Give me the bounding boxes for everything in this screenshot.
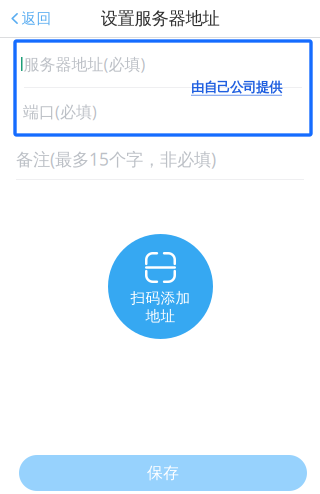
staticText: 设置服务器地址 <box>100 8 219 29</box>
staticText: 返回 <box>21 9 51 27</box>
button[interactable]: 返回 <box>0 0 62 37</box>
staticText: 由自己公司提供 <box>191 79 282 96</box>
button[interactable]: 备注(最多15个字，非必填) <box>0 138 320 180</box>
staticText: 扫码添加 <box>130 289 190 307</box>
button[interactable]: 端口(必填) <box>15 88 311 135</box>
button[interactable]: 保存 <box>19 455 307 491</box>
staticText: 备注(最多15个字，非必填) <box>16 147 216 170</box>
staticText: 端口(必填) <box>23 101 97 122</box>
staticText: 保存 <box>147 463 179 483</box>
button[interactable]: 服务器地址(必填) <box>15 41 311 87</box>
staticText: 地址 <box>145 307 175 325</box>
button[interactable]: 扫码添加 <box>108 234 213 339</box>
staticText: 服务器地址(必填) <box>23 53 145 75</box>
